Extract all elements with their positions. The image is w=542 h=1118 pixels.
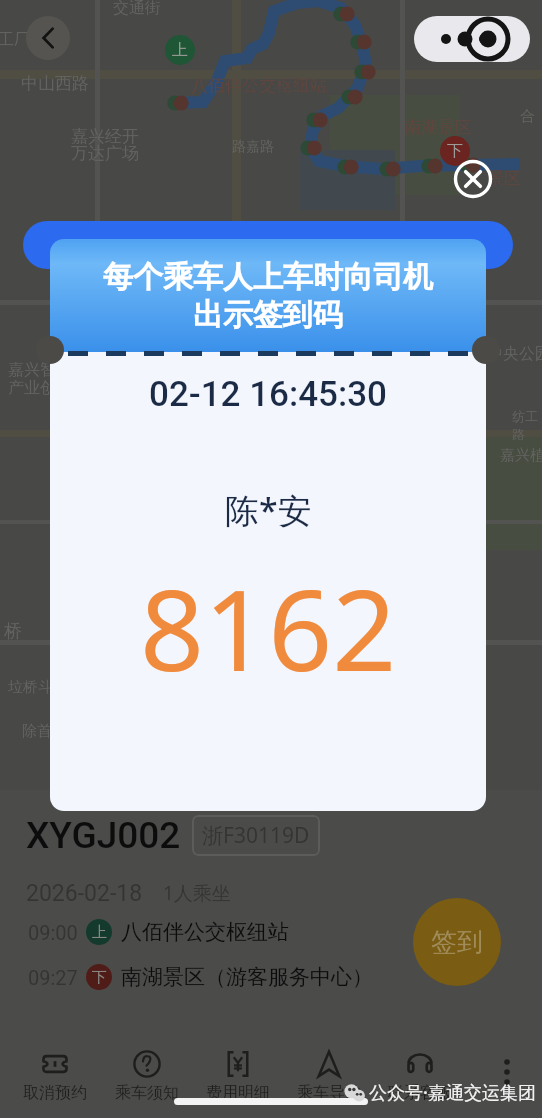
staticText: 浙F30119D: [202, 821, 310, 850]
staticText: 费用明细: [206, 1083, 270, 1103]
staticText: 嘉兴经开: [71, 126, 139, 147]
button[interactable]: Back: [26, 16, 70, 60]
staticText: 中山西路: [21, 73, 89, 94]
staticText: 万达广场: [71, 143, 139, 164]
staticText: 中央公园: [487, 344, 542, 364]
button[interactable]: Close: [453, 159, 493, 199]
button[interactable]: 乘车须知: [107, 1050, 187, 1103]
staticText: 02-12 16:45:30: [149, 374, 387, 415]
staticText: 嘉兴植: [500, 446, 542, 465]
button[interactable]: 费用明细: [198, 1050, 278, 1103]
staticText: 产业创: [8, 378, 56, 398]
staticText: 南湖景区（游客服务中心）: [121, 964, 373, 990]
staticText: 上: [92, 923, 107, 942]
staticText: 上: [172, 40, 188, 60]
staticText: 公众号·嘉通交运集团: [369, 1080, 536, 1105]
staticText: 乘车导航: [297, 1083, 361, 1103]
button[interactable]: 签到: [413, 898, 501, 986]
staticText: 联系客服: [388, 1083, 452, 1103]
staticText: 8162: [140, 551, 397, 704]
staticText: 取消预约: [23, 1083, 87, 1103]
staticText: 南湖景区: [404, 117, 472, 138]
staticText: 除首: [22, 722, 52, 741]
staticText: 合: [520, 107, 535, 126]
staticText: 桥: [4, 620, 22, 643]
staticText: 下: [92, 968, 107, 987]
staticText: 出示签到码: [193, 296, 343, 334]
staticText: 路: [512, 426, 525, 442]
staticText: 景区: [487, 168, 521, 189]
staticText: 纺工: [512, 408, 538, 424]
staticText: 09:27: [28, 966, 78, 989]
button[interactable]: More options: [414, 16, 530, 62]
staticText: 八佰伴公交枢纽站: [121, 919, 289, 945]
staticText: 1人乘坐: [163, 880, 231, 906]
staticText: 09:00: [28, 921, 78, 944]
staticText: 乘车须知: [115, 1083, 179, 1103]
staticText: 陈*安: [225, 487, 312, 533]
staticText: 垃桥斗: [8, 678, 53, 697]
button[interactable]: More: [495, 1056, 519, 1080]
button[interactable]: 取消预约: [15, 1050, 95, 1103]
staticText: 签到: [431, 926, 483, 959]
button[interactable]: 乘车导航: [289, 1050, 369, 1103]
staticText: 嘉兴智: [8, 360, 56, 380]
staticText: XYGJ002: [26, 814, 181, 857]
staticText: 下: [447, 141, 463, 161]
staticText: 八佰伴公交枢纽站: [191, 75, 327, 96]
staticText: 每个乘车人上车时向司机: [103, 258, 433, 296]
staticText: 工厂: [0, 30, 30, 50]
button[interactable]: 联系客服: [380, 1050, 460, 1103]
staticText: 路嘉路: [232, 138, 274, 156]
staticText: 2026-02-18: [26, 880, 143, 907]
staticText: 交通街: [113, 0, 161, 18]
